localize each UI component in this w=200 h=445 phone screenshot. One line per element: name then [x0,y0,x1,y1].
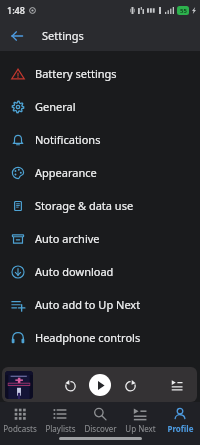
staticText: Auto add to Up Next [35,297,141,312]
staticText: Auto download [35,264,114,279]
button[interactable]: Profile [160,402,200,445]
button[interactable]: Discover [80,402,120,445]
staticText: Appearance [35,165,97,180]
staticText: Discover [84,423,117,434]
button[interactable]: Auto add to Up Next [0,288,200,321]
staticText: Auto archive [35,231,100,246]
staticText: Up Next [125,423,156,434]
staticText: Headphone controls [35,330,141,345]
button[interactable]: Storage & data use [0,189,200,222]
button[interactable]: Play [89,374,111,396]
button[interactable]: Up Next [166,374,188,396]
staticText: 1:48 [7,4,25,16]
button[interactable]: General [0,90,200,123]
staticText: Battery settings [35,66,117,81]
button[interactable]: Podcasts [0,402,40,445]
staticText: Profile [167,423,194,434]
staticText: Storage & data use [35,198,134,213]
button[interactable]: Playlists [40,402,80,445]
staticText: Podcasts [3,423,37,434]
button[interactable]: Up Next [120,402,160,445]
button[interactable]: Auto archive [0,222,200,255]
button[interactable]: Headphone controls [0,321,200,354]
button[interactable]: Notifications [0,123,200,156]
staticText: 55 [180,7,187,15]
button[interactable]: Appearance [0,156,200,189]
button[interactable]: Now playing artwork [5,371,33,399]
button[interactable]: Skip back 10 seconds [59,374,81,396]
button[interactable]: Back [4,23,30,49]
button[interactable]: Auto download [0,255,200,288]
staticText: General [35,99,76,114]
button[interactable]: Battery settings [0,57,200,90]
staticText: Playlists [45,423,76,434]
staticText: Notifications [35,132,101,147]
staticText: Settings [42,28,84,43]
button[interactable]: Skip forward 30 seconds [119,374,141,396]
